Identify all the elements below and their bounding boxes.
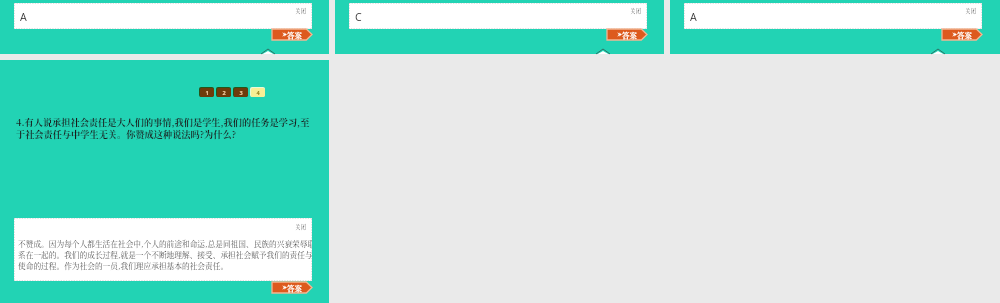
staticText: 4 <box>256 89 260 97</box>
button[interactable]: 2 <box>216 87 231 97</box>
staticText: 答案 <box>622 29 637 40</box>
staticText: 2 <box>222 89 226 97</box>
staticText: 关闭 <box>295 223 307 231</box>
button[interactable]: 查看答案 <box>272 282 312 293</box>
staticText: 关闭 <box>630 7 642 15</box>
staticText: 3 <box>239 89 243 97</box>
staticText: 4.有人说承担社会责任是大人们的事情,我们是学生,我们的任务是学习,至于社会责任… <box>16 115 311 141</box>
staticText: A <box>20 10 27 24</box>
button[interactable]: 3 <box>233 87 248 97</box>
button[interactable]: 查看答案 <box>942 29 982 40</box>
staticText: A <box>690 10 697 24</box>
staticText: 不赞成。因为每个人都生活在社会中,个人的前途和命运,总是同祖国、民族的兴衰荣辱联… <box>18 238 312 271</box>
button[interactable]: 4 <box>250 87 265 97</box>
staticText: C <box>355 10 362 24</box>
button[interactable]: 查看答案 <box>607 29 647 40</box>
staticText: 答案 <box>287 282 302 293</box>
button[interactable]: 1 <box>199 87 214 97</box>
staticText: 答案 <box>957 29 972 40</box>
staticText: 1 <box>205 89 209 97</box>
staticText: 关闭 <box>295 7 307 15</box>
staticText: 关闭 <box>965 7 977 15</box>
button[interactable]: 查看答案 <box>272 29 312 40</box>
staticText: 答案 <box>287 29 302 40</box>
